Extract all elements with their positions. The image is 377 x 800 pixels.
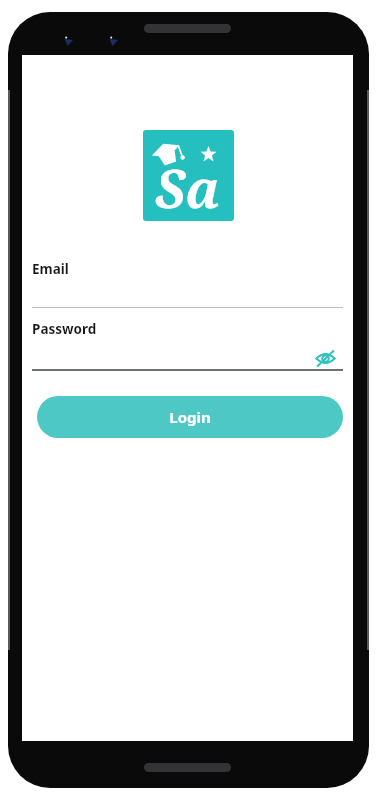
- staticText: Email: [32, 260, 69, 278]
- staticText: Sa: [155, 152, 221, 221]
- button[interactable]: Show password: [310, 343, 340, 373]
- button[interactable]: Login: [37, 396, 343, 438]
- staticText: Password: [32, 320, 97, 338]
- staticText: Login: [169, 407, 211, 427]
